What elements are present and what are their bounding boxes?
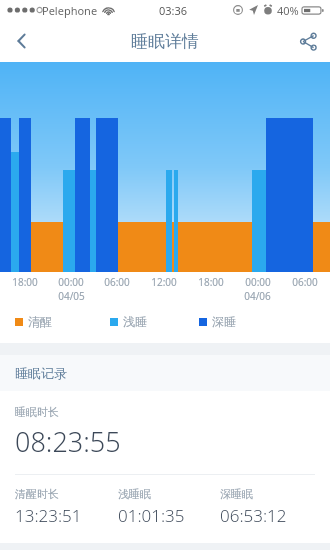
staticText: 04/05: [58, 289, 85, 303]
staticText: 睡眠详情: [131, 31, 199, 52]
staticText: 睡眠记录: [15, 365, 67, 381]
staticText: 12:00: [151, 275, 177, 289]
staticText: Pelephone: [42, 3, 98, 18]
staticText: 睡眠时长: [15, 405, 59, 419]
staticText: 清醒时长: [15, 487, 59, 501]
staticText: 00:00: [58, 275, 84, 289]
staticText: 浅睡: [123, 314, 147, 329]
staticText: 03:36: [159, 3, 188, 18]
staticText: 深睡眠: [220, 487, 253, 501]
staticText: 01:01:35: [118, 504, 185, 527]
staticText: 13:23:51: [15, 504, 82, 527]
button[interactable]: Share: [286, 20, 330, 62]
staticText: 04/06: [244, 289, 271, 303]
staticText: 06:00: [292, 275, 318, 289]
staticText: 深睡: [212, 314, 236, 329]
staticText: 18:00: [198, 275, 224, 289]
staticText: 00:00: [245, 275, 271, 289]
button[interactable]: Back: [0, 20, 44, 62]
staticText: 06:53:12: [220, 504, 287, 527]
staticText: 18:00: [12, 275, 38, 289]
staticText: 08:23:55: [15, 423, 121, 460]
staticText: 06:00: [104, 275, 130, 289]
staticText: 浅睡眠: [118, 487, 151, 501]
staticText: 40%: [277, 3, 299, 18]
staticText: 清醒: [28, 314, 52, 329]
